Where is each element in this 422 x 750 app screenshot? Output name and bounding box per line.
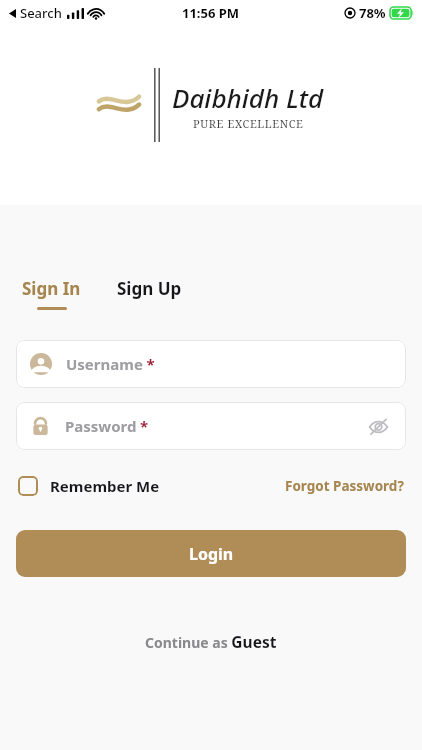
button[interactable]: Forgot Password? bbox=[283, 473, 406, 499]
staticText: Password * bbox=[65, 416, 149, 436]
button[interactable]: Continue as Guest bbox=[137, 627, 285, 656]
staticText: Search bbox=[20, 4, 62, 22]
button[interactable]: Password field bbox=[16, 402, 406, 450]
button[interactable]: Show password bbox=[365, 413, 392, 440]
staticText: Forgot Password? bbox=[285, 477, 404, 495]
button[interactable]: Remember Me bbox=[16, 472, 162, 500]
staticText: 11:56 PM bbox=[182, 4, 240, 22]
staticText: Daibhidh Ltd bbox=[172, 80, 324, 115]
button[interactable]: Username field bbox=[16, 340, 406, 388]
button[interactable]: Sign In bbox=[18, 275, 85, 312]
staticText: Sign In bbox=[22, 277, 81, 300]
button[interactable]: Login bbox=[16, 530, 406, 577]
staticText: Login bbox=[189, 543, 234, 565]
button[interactable]: Sign Up bbox=[113, 275, 186, 302]
staticText: Remember Me bbox=[50, 476, 160, 496]
staticText: Continue as Guest bbox=[145, 631, 277, 652]
staticText: 78% bbox=[359, 4, 386, 22]
staticText: PURE EXCELLENCE bbox=[193, 116, 304, 131]
staticText: Sign Up bbox=[117, 277, 182, 300]
staticText: Username * bbox=[66, 354, 155, 374]
